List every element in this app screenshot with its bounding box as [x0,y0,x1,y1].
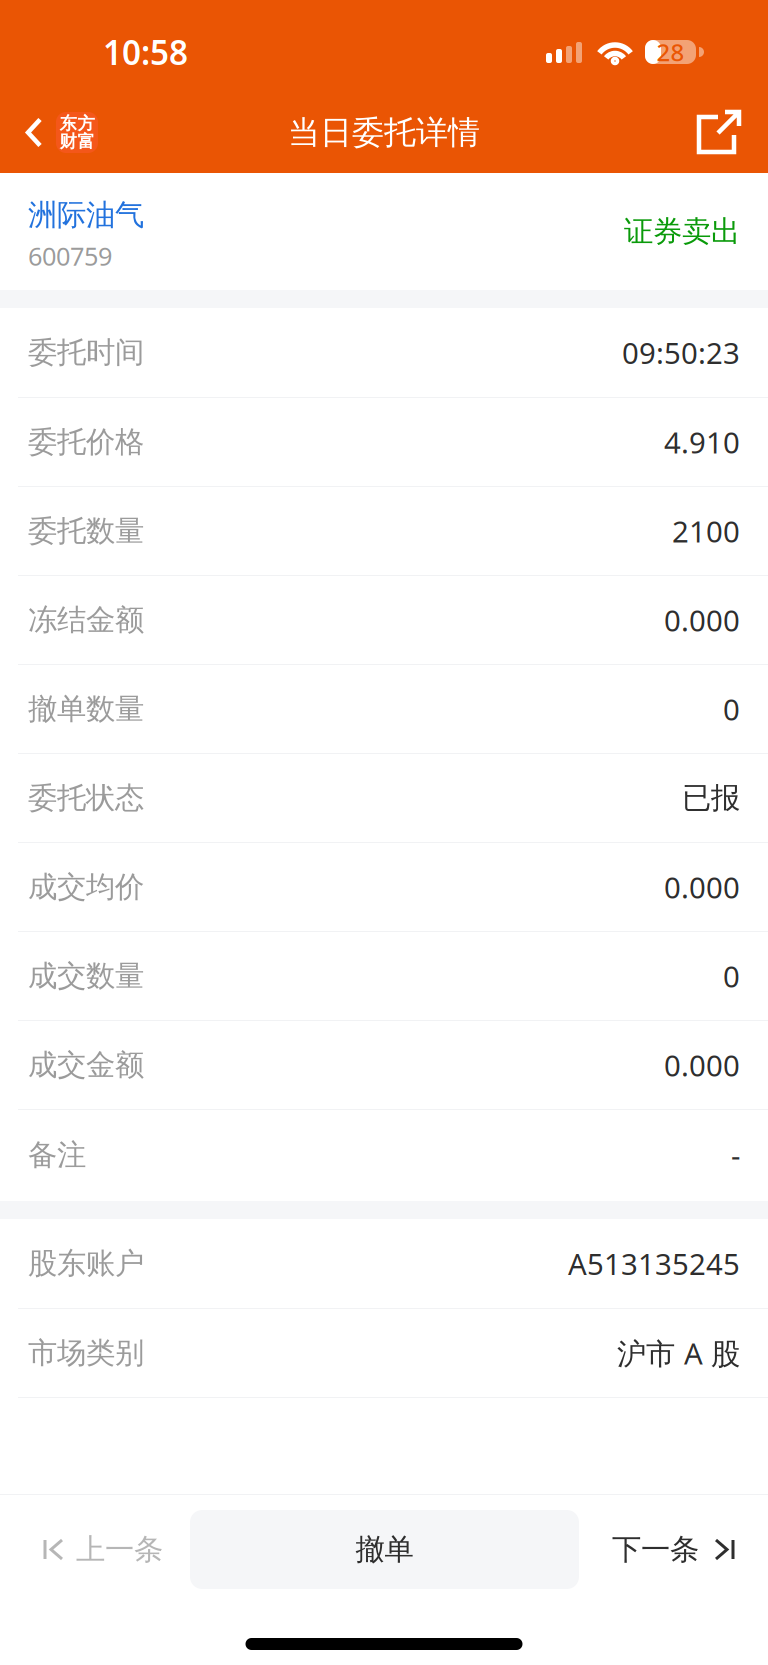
button[interactable]: Share [687,101,752,163]
staticText: A513135245 [568,1244,740,1283]
staticText: - [731,1135,740,1174]
staticText: 600759 [28,239,112,273]
staticText: 0 [723,956,740,995]
staticText: 委托时间 [28,334,144,370]
staticText: 冻结金额 [28,602,144,638]
staticText: 洲际油气 [28,197,144,233]
staticText: 10:58 [103,30,188,74]
staticText: 下一条 [612,1531,699,1567]
staticText: 沪市 A 股 [617,1333,740,1372]
staticText: 上一条 [76,1531,163,1567]
staticText: 股东账户 [28,1245,144,1281]
staticText: 0.000 [664,867,740,906]
staticText: 方 [77,113,94,134]
staticText: 已报 [682,780,740,816]
staticText: 4.910 [664,422,740,461]
staticText: 当日委托详情 [288,113,480,152]
staticText: 成交均价 [28,869,144,905]
staticText: 委托数量 [28,513,144,549]
staticText: 东 [59,113,76,134]
staticText: 28 [656,36,684,68]
staticText: 0.000 [664,1045,740,1084]
button[interactable]: 上一条 [0,1495,190,1604]
button[interactable]: 撤单 [190,1510,579,1589]
staticText: 证券卖出 [624,213,740,249]
staticText: 委托价格 [28,424,144,460]
staticText: 撤单 [355,1531,413,1567]
staticText: 委托状态 [28,780,144,816]
staticText: 成交金额 [28,1047,144,1083]
staticText: 撤单数量 [28,691,144,727]
staticText: 0 [723,689,740,728]
staticText: 09:50:23 [622,333,740,372]
staticText: 2100 [672,511,740,550]
button[interactable]: Back [16,101,106,163]
staticText: 市场类别 [28,1335,144,1371]
staticText: 财 [59,131,76,152]
staticText: 0.000 [664,600,740,639]
button[interactable]: 下一条 [579,1495,768,1604]
staticText: 成交数量 [28,958,144,994]
staticText: 富 [77,131,94,152]
staticText: 备注 [28,1137,86,1173]
